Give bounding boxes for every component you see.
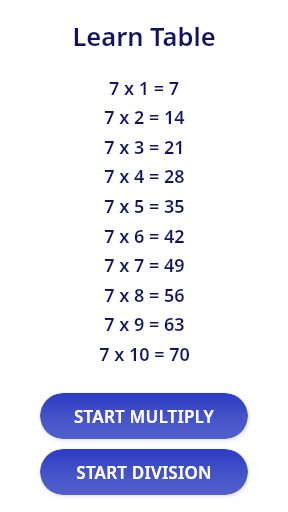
button[interactable]: 7 x 6 = 42: [0, 221, 288, 251]
staticText: START DIVISION: [76, 461, 212, 484]
button[interactable]: 7 x 7 = 49: [0, 251, 288, 280]
staticText: START MULTIPLY: [74, 405, 214, 428]
button[interactable]: 7 x 3 = 21: [0, 132, 288, 162]
button[interactable]: 7 x 8 = 56: [0, 280, 288, 310]
staticText: 7 x 3 = 21: [104, 135, 185, 160]
button[interactable]: 7 x 10 = 70: [0, 339, 288, 369]
staticText: 7 x 1 = 7: [109, 76, 179, 101]
button[interactable]: 7 x 9 = 63: [0, 310, 288, 339]
staticText: 7 x 6 = 42: [104, 224, 185, 249]
button[interactable]: 7 x 5 = 35: [0, 191, 288, 221]
button[interactable]: START DIVISION: [40, 449, 248, 495]
staticText: 7 x 9 = 63: [104, 312, 185, 337]
staticText: 7 x 8 = 56: [104, 283, 185, 308]
staticText: 7 x 2 = 14: [104, 105, 185, 130]
button[interactable]: 7 x 2 = 14: [0, 103, 288, 132]
button[interactable]: 7 x 1 = 7: [0, 73, 288, 103]
staticText: Learn Table: [72, 19, 216, 54]
staticText: 7 x 7 = 49: [104, 253, 185, 278]
staticText: 7 x 10 = 70: [99, 342, 190, 367]
button[interactable]: 7 x 4 = 28: [0, 162, 288, 191]
staticText: 7 x 4 = 28: [104, 164, 185, 189]
staticText: 7 x 5 = 35: [104, 194, 185, 219]
button[interactable]: START MULTIPLY: [40, 393, 248, 439]
